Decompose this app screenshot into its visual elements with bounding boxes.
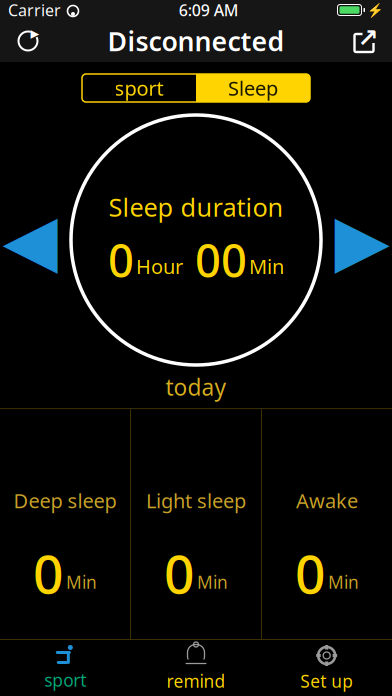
staticText: Sleep duration [108,190,283,224]
staticText: Min [66,571,97,594]
staticText: today [165,372,226,402]
staticText: ⚡ [367,2,384,18]
staticText: 0 [164,538,195,608]
staticText: Set up [300,669,353,692]
staticText: Min [197,571,228,594]
staticText: 0 [33,538,64,608]
staticText: ▸ [30,23,39,43]
button[interactable]: Previous day [2,200,58,280]
button[interactable]: remind [131,642,261,694]
staticText: ▶ [334,199,389,281]
staticText: 0 [295,538,326,608]
staticText: sport [44,668,86,691]
staticText: Sleep [228,75,278,101]
staticText: Awake [296,487,358,514]
staticText: Min [328,571,359,594]
button[interactable]: Sleep [196,74,310,102]
button[interactable]: sport [0,642,131,694]
staticText: sport [114,75,163,101]
button[interactable]: Next day [334,200,390,280]
staticText: Hour [136,253,183,280]
staticText: Deep sleep [13,487,116,514]
staticText: Disconnected [107,23,284,59]
button[interactable]: sport [82,74,196,102]
staticText: Carrier [8,0,61,21]
staticText: 6:09 AM [179,0,239,21]
button[interactable]: Refresh [6,21,50,61]
button[interactable]: Set up [261,642,392,694]
staticText: ◀ [2,199,57,281]
staticText: 00 [195,230,247,290]
staticText: Light sleep [146,487,246,514]
staticText: 0 [108,230,134,290]
staticText: Min [249,253,284,280]
staticText: ↗ [357,24,378,52]
button[interactable]: Share [342,21,386,61]
staticText: remind [166,669,225,692]
